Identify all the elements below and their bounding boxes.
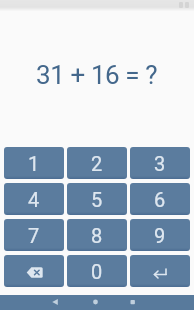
button[interactable] — [130, 255, 190, 287]
button[interactable]: 8 — [67, 219, 127, 251]
button[interactable]: 3 — [130, 147, 190, 179]
button[interactable] — [4, 255, 64, 287]
staticText: 2 — [91, 152, 103, 175]
button[interactable]: 4 — [4, 183, 64, 215]
button[interactable]: 7 — [4, 219, 64, 251]
staticText: 31 + 16 = ? — [36, 60, 158, 90]
button[interactable]: 5 — [67, 183, 127, 215]
button[interactable] — [82, 295, 110, 310]
button[interactable]: 9 — [130, 219, 190, 251]
staticText: 8 — [91, 224, 103, 247]
button[interactable]: 2 — [67, 147, 127, 179]
staticText: 0 — [91, 260, 103, 283]
button[interactable] — [41, 295, 69, 310]
staticText: 5 — [91, 188, 103, 211]
staticText: 3 — [154, 152, 166, 175]
staticText: 7 — [28, 224, 40, 247]
staticText: 4 — [28, 188, 40, 211]
staticText: 6 — [154, 188, 166, 211]
staticText: 1 — [28, 152, 40, 175]
staticText: 9 — [154, 224, 166, 247]
button[interactable]: 0 — [67, 255, 127, 287]
button[interactable]: 1 — [4, 147, 64, 179]
button[interactable] — [119, 295, 147, 310]
button[interactable]: 6 — [130, 183, 190, 215]
